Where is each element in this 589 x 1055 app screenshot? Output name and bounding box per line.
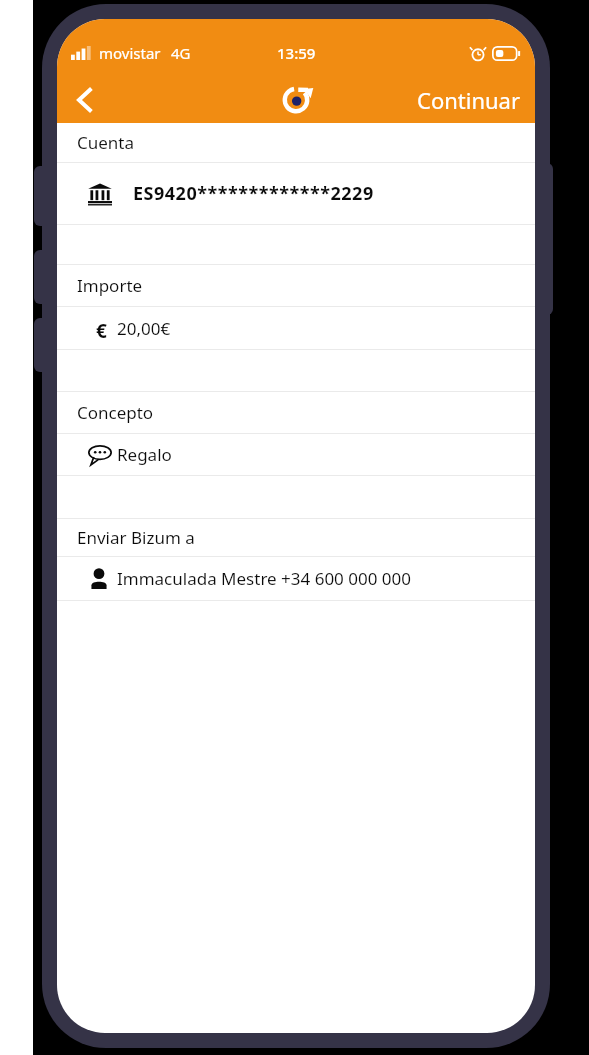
staticText: Concepto — [77, 401, 154, 424]
staticText: ES9420*************2229 — [133, 181, 374, 206]
staticText: Regalo — [117, 443, 172, 466]
staticText: Immaculada Mestre +34 600 000 000 — [117, 567, 412, 590]
button[interactable]: Destinatario — [57, 557, 535, 600]
staticText: Continuar — [417, 85, 521, 115]
staticText: 20,00€ — [117, 317, 171, 340]
button[interactable]: Importe — [57, 307, 535, 349]
button[interactable]: Cuenta bancaria — [57, 163, 535, 224]
staticText: Importe — [77, 274, 143, 297]
staticText: 4G — [171, 43, 191, 63]
staticText: € — [96, 318, 107, 338]
staticText: movistar — [99, 43, 161, 63]
button[interactable]: Atrás — [57, 77, 113, 123]
staticText: 13:59 — [277, 43, 316, 63]
staticText: Enviar Bizum a — [77, 526, 195, 549]
staticText: Cuenta — [77, 131, 135, 154]
button[interactable]: Continuar — [403, 77, 535, 123]
button[interactable]: Concepto — [57, 434, 535, 475]
